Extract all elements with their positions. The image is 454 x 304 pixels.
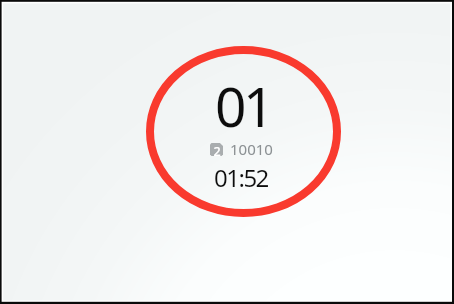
staticText: 10010 — [230, 139, 273, 159]
staticText: 2 — [213, 143, 221, 156]
button[interactable]: Ongoing call, 01, SIM 2, 10010, 01:52 — [146, 46, 341, 217]
button[interactable]: SIM 2 — [210, 139, 273, 159]
staticText: 01:52 — [214, 161, 268, 194]
staticText: 01 — [215, 68, 271, 143]
other: SIM 2 — [210, 143, 223, 156]
